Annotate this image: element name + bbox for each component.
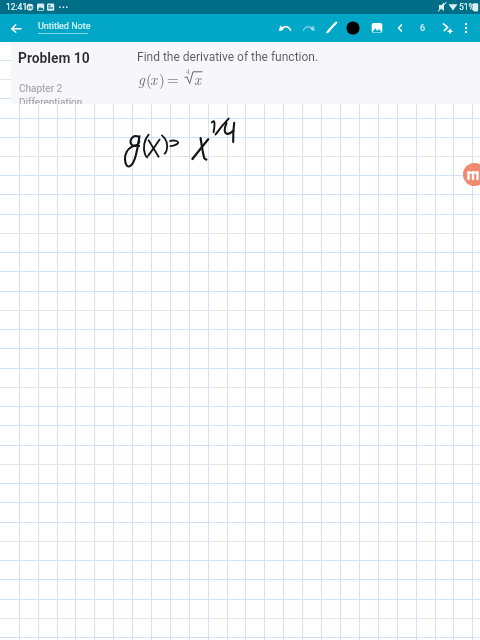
button[interactable]: Pen (320, 14, 342, 42)
staticText: 12:41 (6, 2, 28, 12)
staticText: g (138, 68, 145, 89)
button[interactable]: Previous page (389, 14, 411, 42)
button[interactable]: Next page (436, 14, 458, 42)
button[interactable]: 6 (412, 14, 434, 42)
staticText: Problem 10 (18, 50, 90, 66)
button[interactable]: Insert image (366, 14, 388, 42)
staticText: 6 (420, 23, 426, 34)
staticText: ( (146, 68, 152, 89)
staticText: x (194, 68, 201, 89)
button[interactable]: Undo (274, 14, 296, 42)
staticText: ) (159, 68, 165, 89)
button[interactable]: Ink colour (342, 14, 364, 42)
staticText: 4 (186, 66, 190, 76)
button[interactable]: Untitled Note (38, 18, 94, 38)
staticText: Chapter 2 (19, 83, 63, 95)
staticText: Untitled Note (38, 21, 91, 32)
button[interactable]: Redo (298, 14, 320, 42)
staticText: Differentiation (19, 97, 83, 104)
staticText: 51% (459, 2, 475, 12)
staticText: x (150, 68, 157, 89)
staticText: = (167, 68, 179, 89)
staticText: Find the derivative of the function. (137, 50, 319, 64)
button[interactable]: Open Mathway solver (463, 163, 480, 186)
button[interactable]: Back (4, 14, 28, 42)
button[interactable]: More options (455, 14, 477, 42)
